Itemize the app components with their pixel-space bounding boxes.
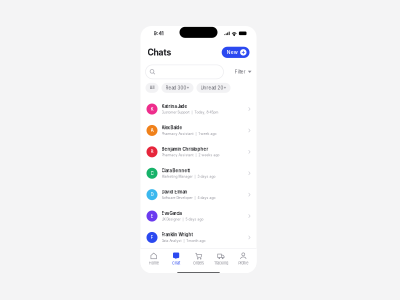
staticText: 9:41 bbox=[153, 30, 163, 36]
staticText: Software Developer | 4 days ago bbox=[161, 196, 215, 200]
button[interactable]: F bbox=[140, 227, 256, 248]
button[interactable]: Orders bbox=[187, 252, 210, 265]
staticText: David Elman bbox=[161, 189, 187, 195]
staticText: UX Designer | 5 days ago bbox=[161, 217, 203, 221]
button[interactable]: A bbox=[140, 120, 256, 141]
button[interactable]: K bbox=[140, 98, 256, 120]
staticText: Pharmacy Assistant | 1 week ago bbox=[161, 132, 216, 136]
button[interactable]: Unread 20+ bbox=[196, 83, 230, 93]
staticText: Data Analyst | 1 month ago bbox=[161, 239, 205, 243]
button[interactable]: Tracking bbox=[210, 252, 232, 265]
staticText: Franklin Wright bbox=[161, 232, 193, 237]
button[interactable] bbox=[145, 65, 223, 79]
staticText: Marketing Manager | 3 days ago bbox=[161, 175, 215, 179]
staticText: A bbox=[150, 128, 153, 133]
button[interactable]: Read 300+ bbox=[161, 83, 193, 93]
staticText: Tracking bbox=[214, 261, 228, 265]
staticText: Benjamin Christopher bbox=[161, 147, 208, 152]
button[interactable]: D bbox=[140, 184, 256, 205]
button[interactable]: Chat bbox=[165, 252, 187, 265]
staticText: D bbox=[150, 192, 153, 197]
staticText: Orders bbox=[193, 261, 204, 265]
button[interactable]: B bbox=[140, 141, 256, 162]
staticText: Ciara Bennett bbox=[161, 168, 190, 173]
staticText: Chat bbox=[172, 261, 180, 265]
staticText: Customer Support | Today, 8:45pm bbox=[161, 110, 218, 114]
staticText: Chats bbox=[147, 47, 171, 57]
staticText: Home bbox=[149, 261, 159, 265]
staticText: Filter bbox=[235, 69, 246, 75]
button[interactable]: Filter bbox=[235, 66, 251, 78]
staticText: All bbox=[149, 85, 154, 90]
staticText: Profile bbox=[238, 261, 248, 265]
staticText: Read 300+ bbox=[165, 85, 189, 90]
staticText: Alex Balde bbox=[161, 125, 182, 130]
staticText: New bbox=[227, 49, 238, 55]
staticText: Unread 20+ bbox=[200, 85, 226, 90]
button[interactable]: Profile bbox=[232, 252, 254, 265]
staticText: Pharmacy Assistant | 2 weeks ago bbox=[161, 153, 219, 157]
staticText: B bbox=[150, 149, 153, 155]
button[interactable]: C bbox=[140, 162, 256, 184]
button[interactable]: New bbox=[222, 47, 249, 58]
staticText: Eva Garcia bbox=[161, 211, 181, 216]
staticText: Katrina Jade bbox=[161, 104, 187, 109]
staticText: E bbox=[150, 213, 153, 219]
staticText: F bbox=[150, 235, 153, 240]
staticText: K bbox=[150, 106, 153, 112]
button[interactable]: Home bbox=[142, 252, 165, 265]
button[interactable]: All bbox=[145, 83, 158, 93]
staticText: C bbox=[150, 170, 153, 176]
button[interactable]: E bbox=[140, 205, 256, 227]
